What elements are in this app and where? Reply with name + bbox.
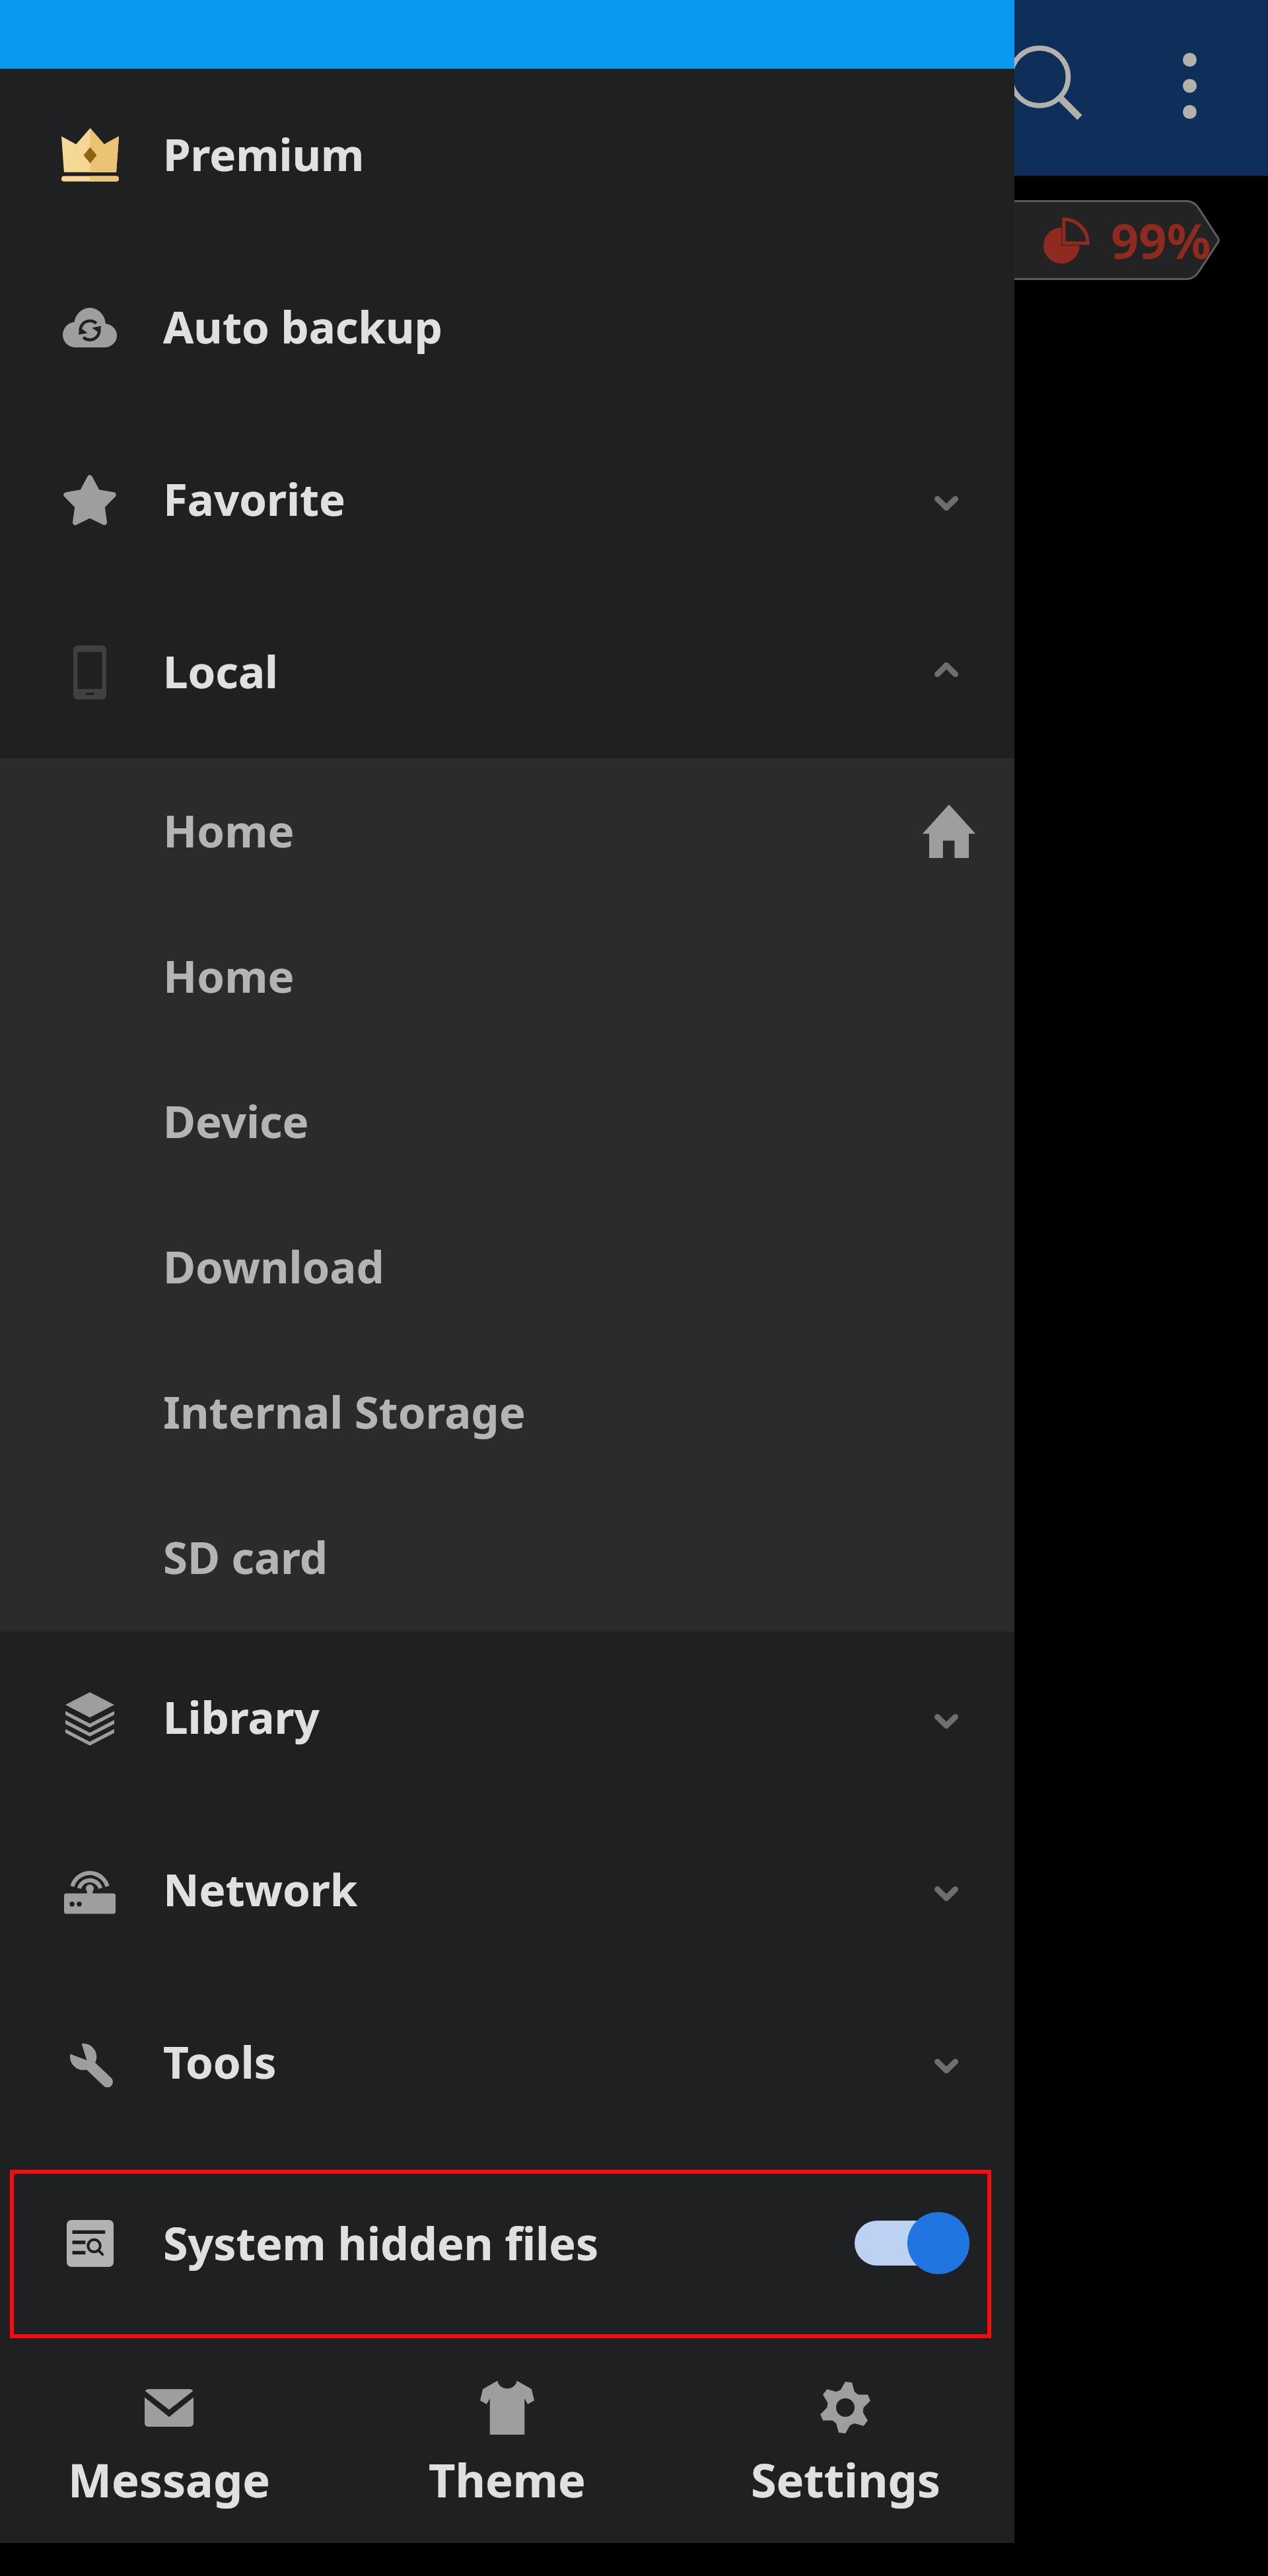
staticText: Home [163,945,295,1005]
button[interactable]: 99% [885,200,1220,280]
staticText: Favorite [163,468,346,528]
staticText: SD card [163,1526,328,1587]
staticText: Library [163,1686,320,1746]
button[interactable]: Network [0,1804,1014,1976]
button[interactable]: Auto backup [0,241,1014,413]
staticText: Premium [163,124,365,184]
button[interactable]: Search [979,18,1111,150]
staticText: Device [163,1091,309,1151]
staticText: Download [163,1236,384,1296]
staticText: Internal Storage [163,1381,526,1441]
staticText: Message [68,2448,271,2511]
button[interactable]: Library [0,1631,1014,1804]
button[interactable]: Internal Storage [0,1340,1014,1485]
button[interactable]: Favorite [0,413,1014,586]
staticText: System hidden files [163,2212,599,2273]
button[interactable]: Premium [0,69,1014,241]
staticText: Settings [751,2448,940,2511]
staticText: Theme [429,2448,586,2511]
button[interactable]: Download [0,1194,1014,1340]
button[interactable]: Show system hidden files [855,2211,969,2275]
button[interactable]: Theme [338,2345,676,2543]
button[interactable]: Home [0,758,1014,904]
button[interactable]: Tools [0,1976,1014,2149]
staticText: Local [163,641,278,701]
button[interactable]: Message [0,2345,338,2543]
staticText: 99% [1111,207,1211,273]
staticText: Network [163,1859,358,1919]
button[interactable]: Device [0,1049,1014,1194]
button[interactable]: Settings [676,2345,1014,2543]
button[interactable]: SD card [0,1485,1014,1630]
staticText: Home [163,800,295,860]
button[interactable]: System hidden files [0,2149,1014,2337]
staticText: Tools [163,2031,277,2091]
staticText: Auto backup [163,296,442,356]
button[interactable]: More options [1130,26,1249,145]
button[interactable]: Local [0,586,1014,758]
button[interactable]: Home [0,904,1014,1049]
